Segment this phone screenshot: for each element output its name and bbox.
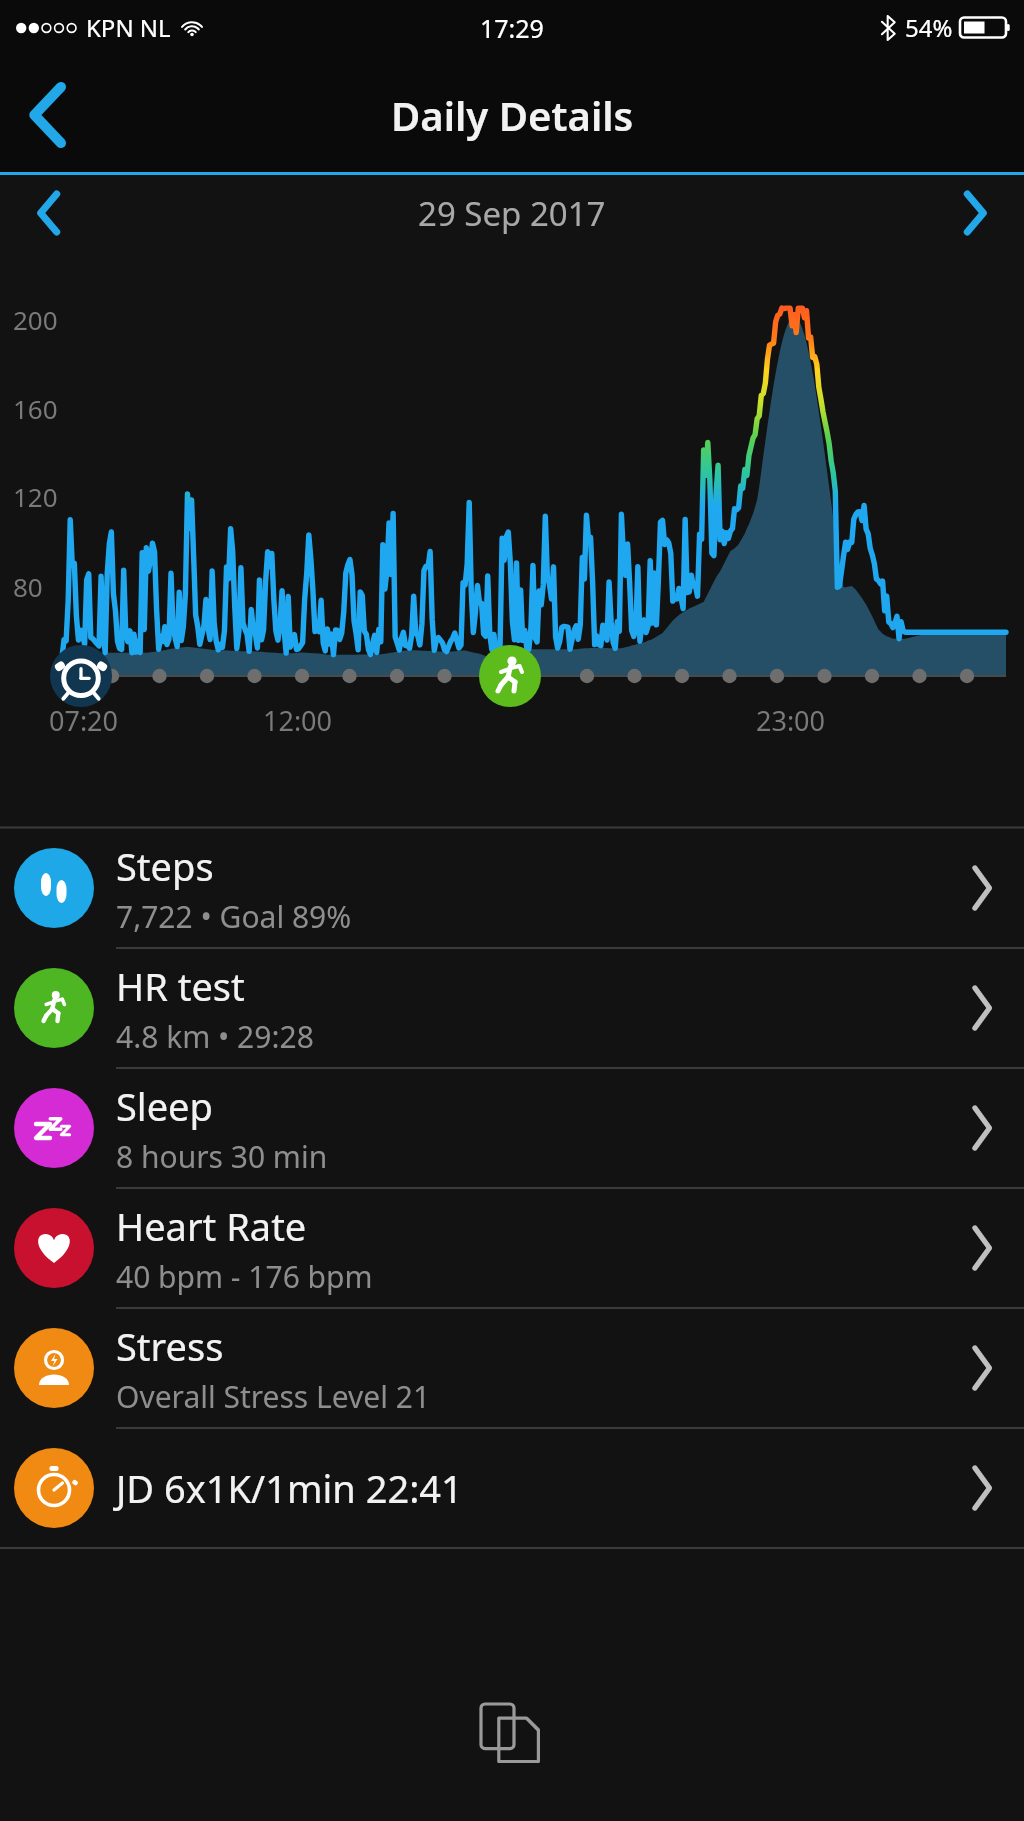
staticText: 23:00 (756, 702, 826, 739)
staticText: 160 (13, 391, 58, 426)
staticText: HR test (116, 960, 245, 1012)
button[interactable]: JD 6x1K/1min 22:41 (0, 1429, 1024, 1547)
button[interactable]: Next day (940, 178, 1010, 248)
button[interactable]: Share (464, 1685, 560, 1781)
staticText: Stress (116, 1320, 224, 1372)
staticText: 12:00 (263, 702, 333, 739)
staticText: 29 Sep 2017 (418, 191, 606, 236)
staticText: 8 hours 30 min (116, 1136, 328, 1177)
button[interactable]: Back (0, 67, 96, 163)
staticText: 80 (13, 569, 43, 604)
staticText: 07:20 (49, 702, 119, 739)
button[interactable]: Heart Rate (0, 1189, 1024, 1307)
button[interactable]: Previous day (14, 178, 84, 248)
staticText: 54% (905, 11, 953, 44)
staticText: KPN NL (86, 11, 171, 44)
staticText: 40 bpm - 176 bpm (116, 1256, 373, 1297)
staticText: Steps (116, 840, 214, 892)
button[interactable]: Stress (0, 1309, 1024, 1427)
button[interactable]: Sleep (0, 1069, 1024, 1187)
staticText: JD 6x1K/1min 22:41 (116, 1462, 463, 1514)
staticText: 200 (13, 302, 58, 337)
staticText: Overall Stress Level 21 (116, 1376, 431, 1417)
staticText: Daily Details (391, 88, 634, 142)
staticText: 7,722 • Goal 89% (116, 896, 352, 937)
button[interactable]: HR test (0, 949, 1024, 1067)
staticText: Heart Rate (116, 1200, 307, 1252)
button[interactable]: Steps (0, 829, 1024, 947)
staticText: 120 (13, 479, 58, 514)
staticText: 4.8 km • 29:28 (116, 1016, 314, 1057)
staticText: Sleep (116, 1080, 213, 1132)
staticText: 17:29 (480, 11, 544, 45)
